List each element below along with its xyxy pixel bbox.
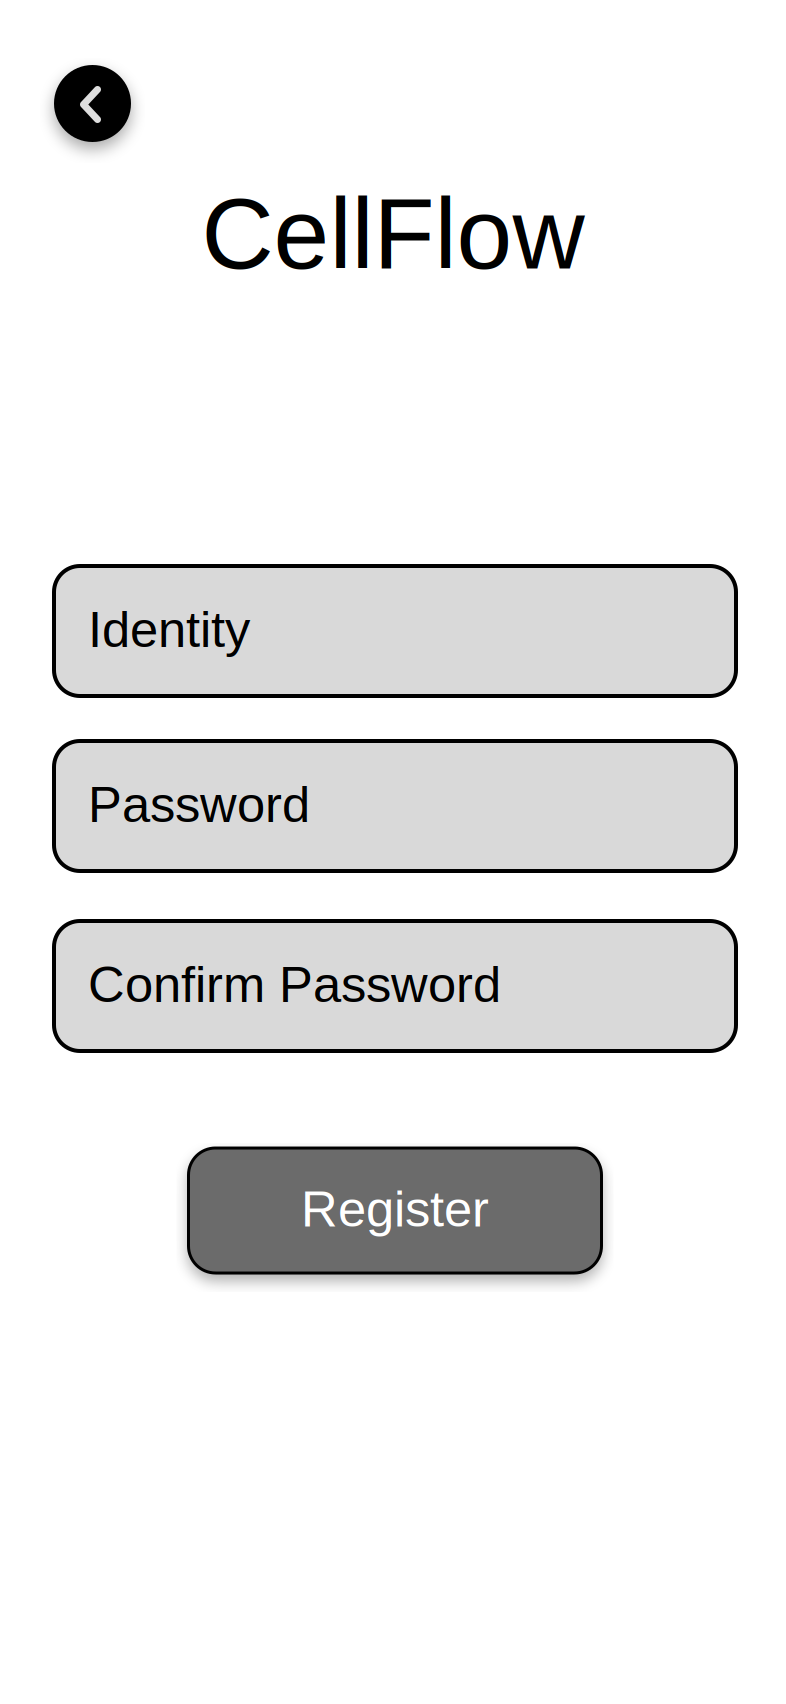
staticText: Identity [88,601,250,658]
button[interactable]: Identity [54,566,736,696]
staticText: Password [88,776,310,833]
button[interactable]: Back [54,65,131,142]
button[interactable]: Confirm Password [54,921,736,1051]
staticText: Register [301,1181,489,1237]
button[interactable]: Register [188,1148,601,1273]
staticText: CellFlow [201,178,584,290]
button[interactable]: Password [54,741,736,871]
staticText: Confirm Password [88,956,501,1013]
